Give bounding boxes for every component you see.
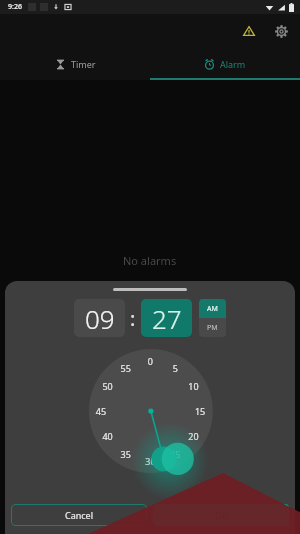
button[interactable]: OK — [153, 504, 289, 526]
button[interactable]: Timer — [0, 48, 150, 80]
staticText: 09 — [85, 301, 115, 336]
button[interactable]: PM — [199, 318, 226, 337]
button[interactable]: Cancel — [11, 504, 147, 526]
button[interactable]: Alarm — [150, 48, 300, 80]
button[interactable]: 27 — [141, 299, 192, 337]
staticText: Cancel — [65, 509, 94, 521]
staticText: 27 — [152, 301, 182, 336]
staticText: PM — [207, 323, 218, 333]
staticText: Alarm — [220, 58, 246, 70]
staticText: 9:26 — [8, 2, 22, 12]
button[interactable]: Settings — [270, 20, 292, 42]
button[interactable]: 09 — [74, 299, 125, 337]
staticText: : — [130, 305, 136, 332]
staticText: No alarms — [123, 253, 177, 268]
button[interactable]: Warning — [238, 20, 260, 42]
staticText: Timer — [71, 58, 96, 70]
button[interactable]: AM — [199, 299, 226, 318]
staticText: AM — [207, 304, 218, 314]
